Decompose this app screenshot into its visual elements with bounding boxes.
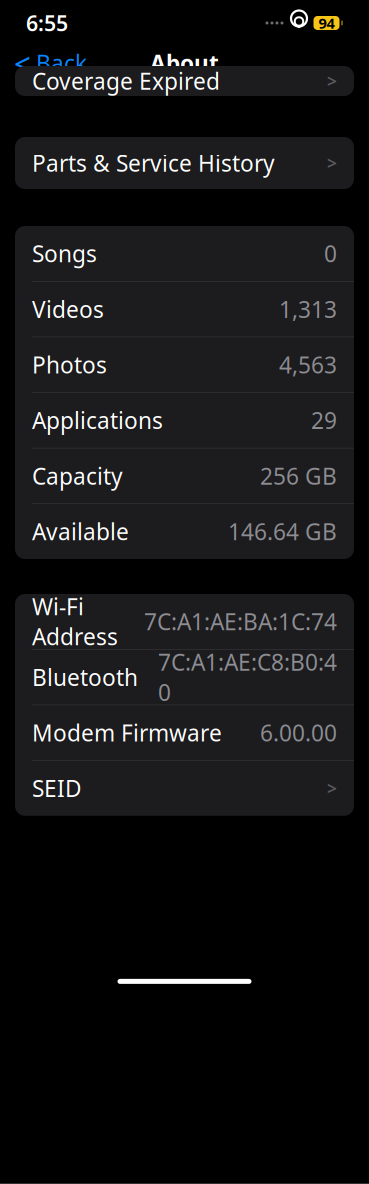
staticText: Bluetooth: [32, 662, 138, 692]
staticText: 94: [318, 13, 334, 33]
staticText: 146.64 GB: [228, 516, 337, 546]
staticText: 256 GB: [260, 461, 337, 491]
staticText: 0: [324, 238, 337, 268]
staticText: Applications: [32, 405, 163, 435]
button[interactable]: SEID: [15, 761, 354, 816]
staticText: Videos: [32, 294, 104, 324]
staticText: Modem Firmware: [32, 718, 222, 748]
staticText: 6:55: [26, 9, 68, 37]
button[interactable]: Parts & Service History: [15, 137, 354, 189]
staticText: About: [150, 48, 219, 78]
staticText: Coverage Expired: [32, 66, 220, 96]
staticText: SEID: [32, 773, 82, 803]
staticText: 1,313: [279, 294, 337, 324]
staticText: 7C:A1:AE:BA:1C:74: [144, 606, 337, 636]
staticText: Photos: [32, 350, 107, 380]
staticText: Capacity: [32, 461, 123, 491]
staticText: 6.00.00: [260, 718, 337, 748]
button[interactable]: <: [4, 45, 97, 81]
staticText: <: [14, 43, 31, 82]
staticText: >: [327, 777, 337, 800]
staticText: Parts & Service History: [32, 148, 275, 178]
staticText: >: [327, 151, 337, 174]
staticText: Available: [32, 516, 129, 546]
staticText: Songs: [32, 238, 97, 268]
staticText: Wi-Fi Address: [32, 591, 118, 652]
button[interactable]: Coverage Expired: [15, 66, 354, 96]
staticText: 7C:A1:AE:C8:B0:40: [158, 647, 337, 707]
staticText: >: [327, 69, 337, 92]
staticText: 29: [311, 405, 337, 435]
staticText: Back: [36, 48, 87, 78]
staticText: 4,563: [279, 350, 337, 380]
